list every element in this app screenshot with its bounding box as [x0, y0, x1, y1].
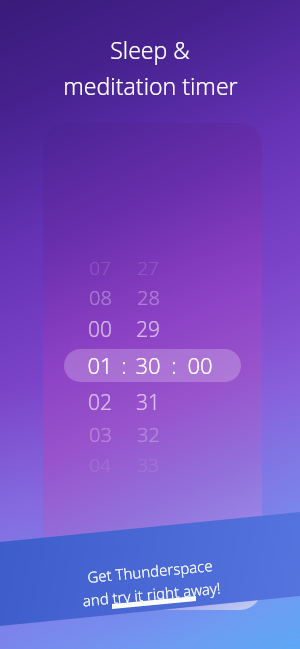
button[interactable]: 08	[80, 281, 120, 313]
button[interactable]: 30	[128, 348, 168, 382]
staticText: 32	[137, 421, 160, 448]
staticText: 30	[135, 350, 161, 380]
button[interactable]	[64, 349, 241, 382]
button[interactable]: 31	[128, 386, 168, 419]
staticText: 28	[137, 284, 160, 311]
staticText: and try it right away!	[81, 577, 222, 610]
staticText: 03	[89, 421, 112, 448]
staticText: 01	[87, 350, 113, 380]
button[interactable]: 27	[128, 252, 168, 283]
staticText: :	[171, 350, 177, 380]
button[interactable]: 28	[128, 281, 168, 313]
button[interactable]: 03	[80, 418, 120, 450]
button[interactable]: 00	[80, 313, 120, 346]
button[interactable]: :	[167, 348, 181, 382]
staticText: 02	[88, 388, 112, 417]
button[interactable]: 32	[128, 418, 168, 450]
button[interactable]: 02	[80, 386, 120, 419]
button[interactable]: 29	[128, 313, 168, 346]
staticText: 00	[88, 315, 112, 344]
button[interactable]: 00	[180, 348, 220, 382]
staticText: 31	[136, 388, 160, 417]
button[interactable]: Get Thunderspace	[0, 540, 300, 624]
staticText: Get Thunderspace	[86, 555, 214, 587]
staticText: 00	[187, 350, 213, 380]
button[interactable]: 01	[80, 348, 120, 382]
staticText: :	[121, 350, 127, 380]
staticText: 07	[89, 255, 111, 281]
staticText: 08	[89, 284, 112, 311]
button[interactable]: 33	[128, 449, 168, 480]
staticText: 29	[136, 315, 160, 344]
staticText: 04	[89, 452, 111, 478]
button[interactable]: :	[117, 348, 131, 382]
staticText: Sleep &	[110, 34, 190, 65]
staticText: 33	[137, 452, 159, 478]
staticText: 27	[137, 255, 159, 281]
staticText: meditation timer	[63, 70, 238, 101]
button[interactable]: 04	[80, 449, 120, 480]
button[interactable]: 07	[80, 252, 120, 283]
